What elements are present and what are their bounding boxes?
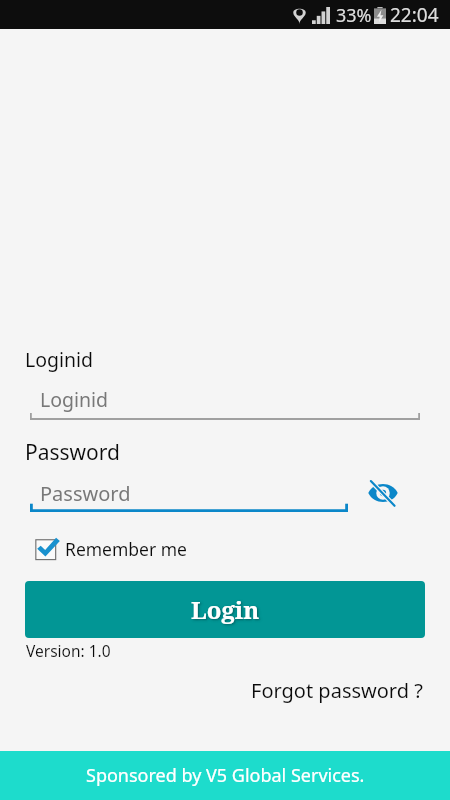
button[interactable]: Password — [30, 480, 348, 512]
staticText: Remember me — [65, 537, 187, 561]
staticText: Loginid — [40, 386, 109, 413]
button[interactable]: Remember me — [33, 534, 187, 564]
staticText: 22:04 — [390, 2, 439, 28]
staticText: Version: 1.0 — [26, 640, 111, 661]
staticText: Loginid — [25, 346, 94, 373]
button[interactable]: Forgot password ? — [251, 677, 423, 704]
staticText: Sponsored by V5 Global Services. — [86, 763, 365, 788]
staticText: Password — [25, 438, 120, 467]
staticText: Password — [40, 480, 131, 507]
button[interactable]: Show password — [361, 471, 405, 515]
button[interactable]: Login — [25, 581, 425, 638]
staticText: Login — [191, 593, 260, 626]
staticText: 33% — [336, 3, 372, 28]
button[interactable]: Loginid — [30, 386, 420, 420]
button[interactable]: Sponsored by V5 Global Services. — [0, 751, 450, 800]
